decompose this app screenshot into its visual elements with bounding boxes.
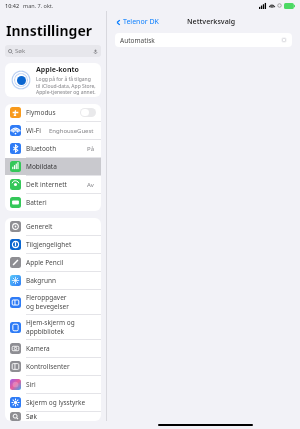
staticText: appbibliotek <box>26 327 65 336</box>
staticText: Innstillinger <box>6 21 93 40</box>
staticText: Søk <box>15 47 26 55</box>
staticText: Siri <box>26 380 36 389</box>
staticText: På <box>87 145 94 153</box>
staticText: Av <box>87 181 94 189</box>
staticText: Bakgrunn <box>26 276 57 285</box>
staticText: Flymodus <box>26 108 56 117</box>
staticText: Kamera <box>26 344 50 353</box>
button[interactable]: Generelt <box>5 218 101 235</box>
staticText: 10:42 <box>5 2 20 9</box>
staticText: og bevegelser <box>26 302 69 311</box>
button[interactable]: Mobildata <box>5 158 101 175</box>
button[interactable]: Fleroppgaver <box>5 290 101 314</box>
staticText: Tilgjengelighet <box>26 240 72 249</box>
button[interactable]: Siri <box>5 376 101 393</box>
staticText: Apple Pencil <box>26 258 64 267</box>
staticText: Søk <box>26 412 37 421</box>
button[interactable]: Apple-konto <box>5 63 101 97</box>
button[interactable]: Kontrollsenter <box>5 358 101 375</box>
staticText: Fleroppgaver <box>26 293 67 302</box>
staticText: Apple-konto <box>36 65 79 75</box>
staticText: Kontrollsenter <box>26 362 70 371</box>
staticText: Automatisk <box>120 36 155 45</box>
staticText: Batteri <box>26 198 47 207</box>
button[interactable]: Hjem-skjerm og <box>5 315 101 339</box>
staticText: Bluetooth <box>26 144 57 153</box>
other: Laster <box>281 37 287 43</box>
staticText: Hjem-skjerm og <box>26 318 75 327</box>
staticText: man. 7. okt. <box>23 2 54 9</box>
button[interactable]: Batteri <box>5 194 101 211</box>
staticText: Generelt <box>26 222 53 231</box>
staticText: Logg på for å få tilgang til iCloud-data… <box>36 76 96 95</box>
staticText: Wi-Fi <box>26 126 41 135</box>
staticText: Telenor DK <box>123 17 159 27</box>
button[interactable]: Bluetooth <box>5 140 101 157</box>
staticText: Mobildata <box>26 162 57 171</box>
button[interactable]: Wi-Fi <box>5 122 101 139</box>
button[interactable]: Tilgjengelighet <box>5 236 101 253</box>
button[interactable]: Søk <box>5 412 101 421</box>
button[interactable]: Skjerm og lysstyrke <box>5 394 101 411</box>
button[interactable]: Automatisk <box>115 33 292 47</box>
button[interactable]: Flymodus <box>5 104 101 121</box>
button[interactable]: Bakgrunn <box>5 272 101 289</box>
staticText: Delt internett <box>26 180 67 189</box>
staticText: EnghouseGuest <box>49 127 94 135</box>
staticText: Nettverksvalg <box>187 17 236 27</box>
button[interactable]: Søk <box>5 45 101 57</box>
button[interactable]: Kamera <box>5 340 101 357</box>
button[interactable]: Apple Pencil <box>5 254 101 271</box>
button[interactable]: Flymodus <box>80 108 96 117</box>
button[interactable]: Delt internett <box>5 176 101 193</box>
button[interactable]: Telenor DK <box>115 17 163 27</box>
staticText: Skjerm og lysstyrke <box>26 398 86 407</box>
